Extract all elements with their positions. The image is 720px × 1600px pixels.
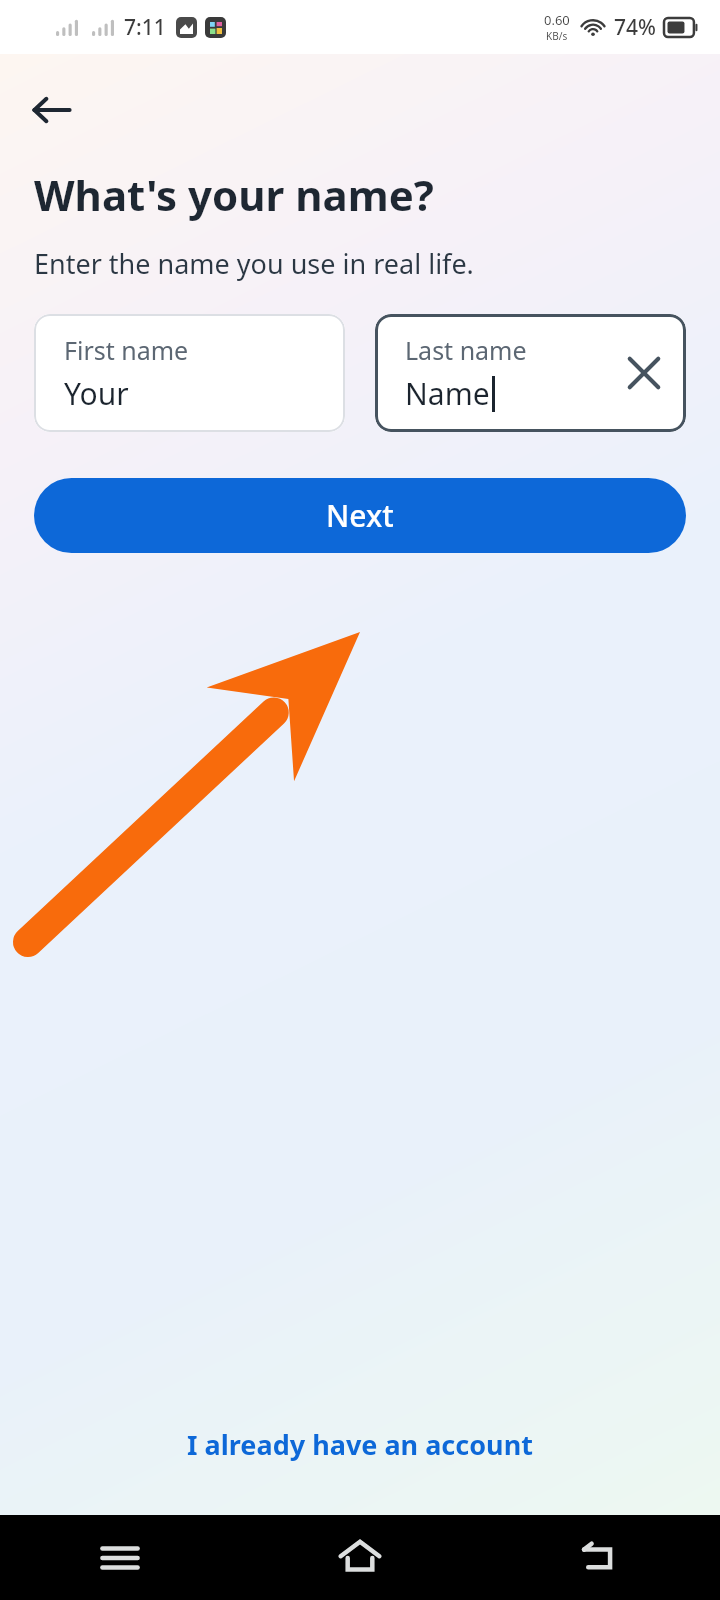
staticText: Next <box>326 495 394 536</box>
button[interactable]: Back <box>480 1515 720 1600</box>
staticText: KB/s <box>546 29 568 43</box>
staticText: Your <box>64 373 129 414</box>
staticText: Last name <box>405 333 527 367</box>
staticText: Name <box>405 373 490 414</box>
button[interactable]: Recent apps <box>0 1515 240 1600</box>
button[interactable]: Home <box>240 1515 480 1600</box>
staticText: Enter the name you use in real life. <box>34 245 474 282</box>
button[interactable]: Last name <box>375 314 686 432</box>
button[interactable]: Back <box>20 78 84 142</box>
staticText: 74% <box>614 13 656 42</box>
button[interactable]: First name <box>34 314 345 432</box>
button[interactable]: Clear text <box>616 345 672 401</box>
staticText: What's your name? <box>34 166 434 223</box>
staticText: 7:11 <box>124 13 166 42</box>
staticText: First name <box>64 333 189 367</box>
staticText: 0.60 <box>544 11 570 29</box>
button[interactable]: I already have an account <box>0 1410 720 1479</box>
button[interactable]: Next <box>34 478 686 553</box>
staticText: I already have an account <box>187 1426 533 1463</box>
